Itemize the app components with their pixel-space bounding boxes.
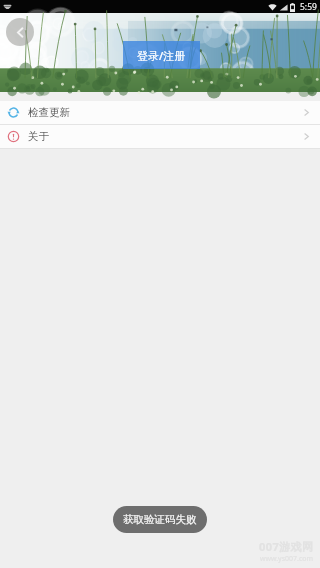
staticText: 5:59 bbox=[300, 1, 317, 13]
staticText: 检查更新 bbox=[28, 106, 70, 119]
staticText: 007游戏网 bbox=[259, 539, 314, 554]
button[interactable]: 登录/注册 bbox=[123, 41, 200, 69]
staticText: 关于 bbox=[28, 130, 49, 143]
staticText: www.ys007.com bbox=[260, 554, 314, 564]
button[interactable]: 检查更新 bbox=[0, 101, 320, 124]
staticText: 登录/注册 bbox=[137, 48, 186, 63]
button[interactable]: 关于 bbox=[0, 125, 320, 148]
button[interactable]: Back bbox=[6, 18, 34, 46]
staticText: 获取验证码失败 bbox=[123, 513, 197, 526]
